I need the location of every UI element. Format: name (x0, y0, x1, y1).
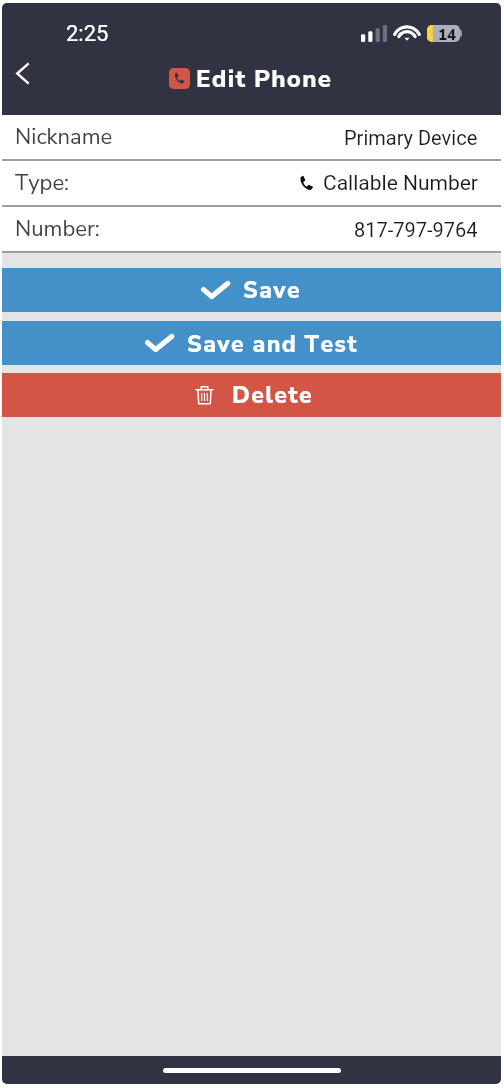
button[interactable]: Back (2, 53, 42, 93)
staticText: Primary Device (344, 126, 478, 149)
button[interactable]: Save and Test (2, 321, 501, 365)
staticText: 14 (438, 25, 457, 41)
staticText: Type: (15, 168, 70, 198)
staticText: Save and Test (187, 327, 358, 360)
staticText: Callable Number (323, 171, 478, 196)
staticText: 2:25 (66, 21, 109, 47)
staticText: Edit Phone (196, 61, 333, 95)
button[interactable]: Delete (2, 373, 501, 417)
staticText: 817-797-9764 (354, 218, 478, 241)
button[interactable]: Type: (2, 161, 501, 205)
button[interactable]: Nickname (2, 115, 501, 159)
staticText: Save (243, 275, 302, 306)
staticText: Number: (15, 214, 100, 244)
staticText: Delete (232, 380, 314, 411)
button[interactable]: Save (2, 268, 501, 312)
button[interactable]: Number: (2, 207, 501, 251)
staticText: Nickname (15, 122, 113, 152)
